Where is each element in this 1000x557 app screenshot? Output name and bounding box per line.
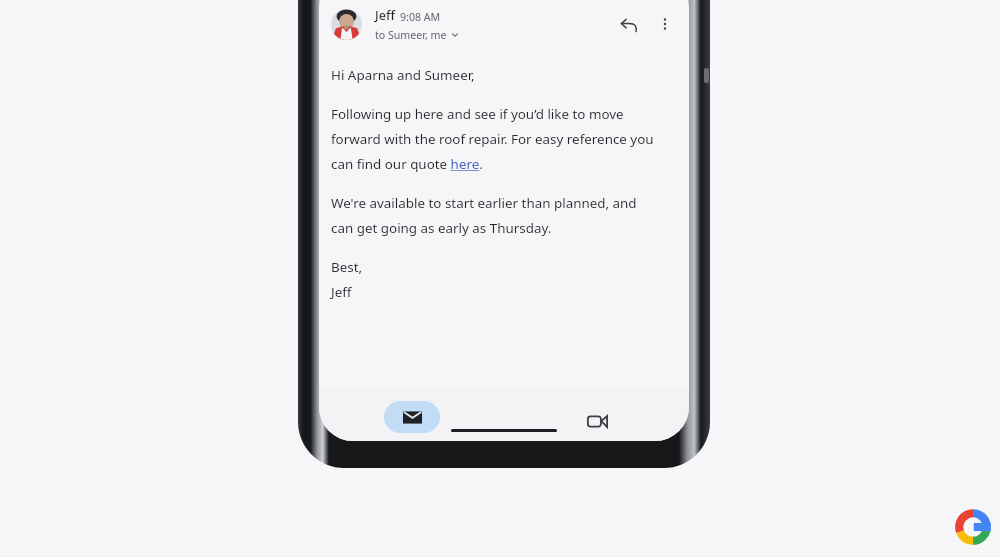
staticText: Hi Aparna and Sumeer,	[331, 66, 475, 84]
button[interactable]: Reply	[611, 7, 645, 41]
staticText: Jeff	[331, 283, 352, 301]
staticText: can find our quote here.	[331, 155, 483, 173]
staticText: Following up here and see if you’d like …	[331, 105, 624, 123]
button[interactable]: Video call	[577, 401, 617, 441]
button[interactable]: Jeff	[319, 0, 689, 52]
button[interactable]: Mail	[384, 401, 440, 433]
staticText: 9:08 AM	[400, 10, 441, 24]
staticText: forward with the roof repair. For easy r…	[331, 130, 654, 148]
staticText: can get going as early as Thursday.	[331, 219, 552, 237]
staticText: to Sumeer, me	[375, 28, 447, 42]
staticText: Best,	[331, 258, 363, 276]
button[interactable]: More options	[649, 8, 681, 40]
staticText: We're available to start earlier than pl…	[331, 194, 637, 212]
staticText: Jeff	[375, 7, 395, 24]
